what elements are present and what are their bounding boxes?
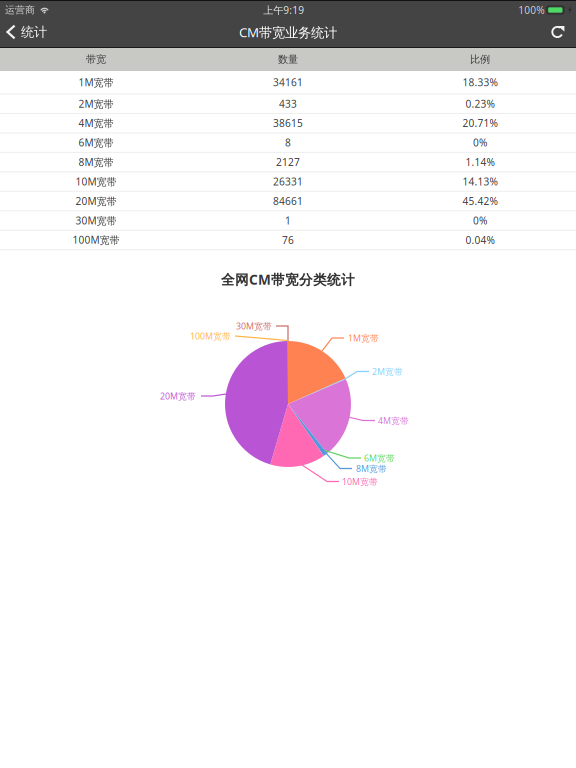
staticText: 26331 (273, 175, 303, 188)
staticText: 30M宽带 (75, 214, 116, 227)
staticText: 20.71% (462, 116, 497, 130)
staticText: 带宽 (86, 53, 106, 66)
staticText: 433 (279, 97, 297, 111)
staticText: 2M宽带 (78, 97, 113, 111)
staticText: 20M宽带 (160, 390, 196, 402)
staticText: 8 (285, 136, 291, 149)
staticText: 比例 (470, 53, 490, 66)
staticText: 100M宽带 (72, 233, 119, 247)
staticText: 76 (282, 233, 294, 247)
staticText: 8M宽带 (78, 155, 113, 169)
staticText: 0% (473, 136, 487, 149)
staticText: 100% (518, 3, 544, 17)
staticText: 0% (473, 214, 487, 227)
staticText: 38615 (273, 116, 303, 130)
staticText: 1 (285, 214, 291, 227)
staticText: 2127 (276, 155, 300, 169)
staticText: 18.33% (462, 75, 497, 89)
staticText: 上午9:19 (263, 3, 304, 17)
staticText: 4M宽带 (378, 414, 409, 426)
staticText: 运营商 (5, 4, 35, 16)
button[interactable]: 统计 (0, 20, 47, 44)
staticText: 10M宽带 (75, 175, 116, 188)
staticText: 2M宽带 (372, 365, 403, 377)
staticText: 6M宽带 (364, 452, 395, 464)
button[interactable]: Refresh (551, 21, 576, 43)
staticText: 全网CM带宽分类统计 (221, 270, 355, 289)
staticText: 0.23% (465, 97, 494, 111)
staticText: 4M宽带 (78, 116, 113, 130)
staticText: 统计 (21, 24, 47, 40)
staticText: 30M宽带 (236, 320, 272, 332)
staticText: 45.42% (462, 194, 497, 208)
staticText: 100M宽带 (190, 330, 231, 342)
staticText: 34161 (273, 75, 303, 89)
staticText: 1M宽带 (78, 75, 113, 89)
staticText: CM带宽业务统计 (239, 23, 337, 41)
staticText: 1M宽带 (348, 332, 379, 344)
staticText: 84661 (273, 194, 303, 208)
staticText: 0.04% (465, 233, 494, 247)
staticText: 数量 (278, 53, 298, 66)
staticText: 8M宽带 (356, 462, 387, 474)
staticText: 10M宽带 (342, 475, 378, 487)
staticText: 6M宽带 (78, 136, 113, 149)
staticText: 14.13% (462, 175, 497, 188)
staticText: 1.14% (465, 155, 494, 169)
staticText: 20M宽带 (75, 194, 116, 208)
